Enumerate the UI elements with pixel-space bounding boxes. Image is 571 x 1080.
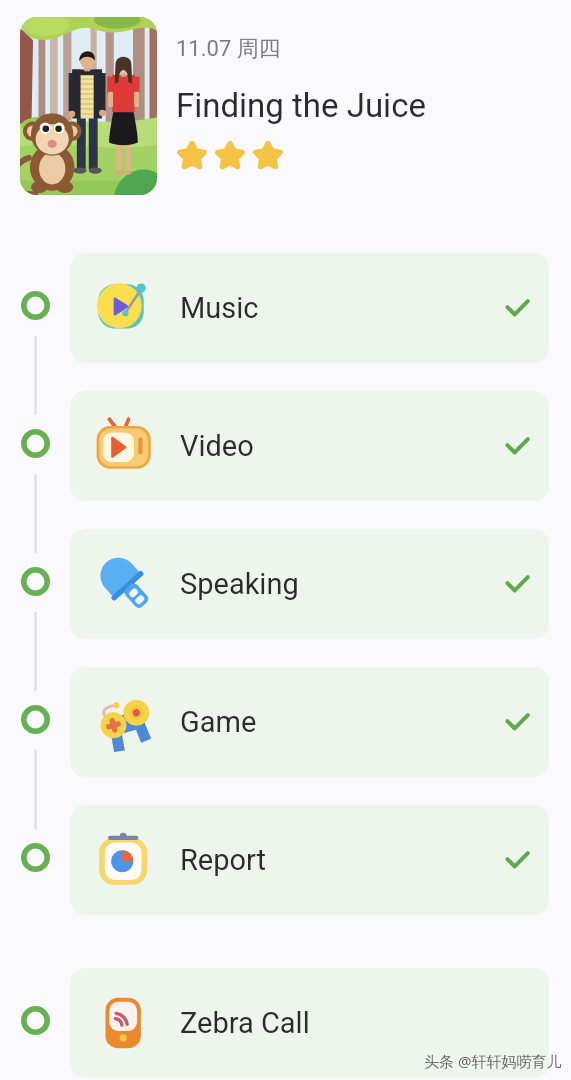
button[interactable]: Zebra Call <box>70 968 549 1078</box>
other: Completed <box>506 299 529 317</box>
button[interactable]: Speaking <box>70 529 549 639</box>
button[interactable]: Music <box>70 253 549 363</box>
other: Completed <box>506 437 529 455</box>
button[interactable]: Report <box>70 805 549 915</box>
staticText: Music <box>180 291 259 325</box>
staticText: Finding the Juice <box>176 86 426 125</box>
staticText: Report <box>180 843 267 877</box>
staticText: Zebra Call <box>180 1006 310 1040</box>
button[interactable]: Lesson thumbnail <box>20 17 157 195</box>
button[interactable]: Video <box>70 391 549 501</box>
staticText: Speaking <box>180 567 299 601</box>
staticText: Game <box>180 705 257 739</box>
staticText: 11.07 周四 <box>176 35 281 63</box>
other: Completed <box>506 713 529 731</box>
other: Completed <box>506 851 529 869</box>
other: Completed <box>506 575 529 593</box>
staticText: Video <box>180 429 254 463</box>
button[interactable]: Game <box>70 667 549 777</box>
staticText: 头条 @轩轩妈唠育儿 <box>424 1051 562 1071</box>
